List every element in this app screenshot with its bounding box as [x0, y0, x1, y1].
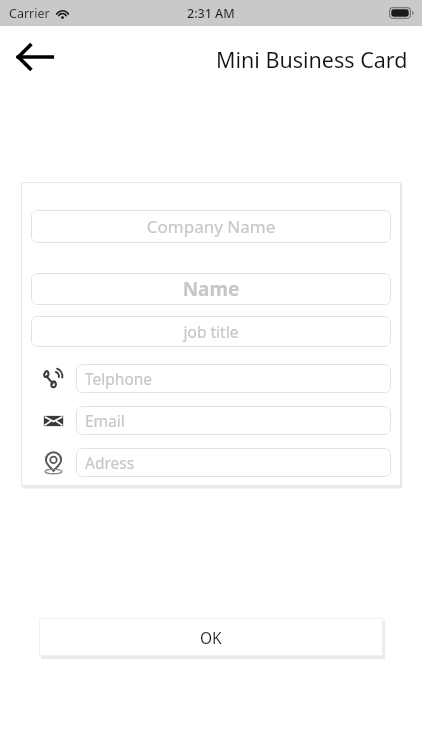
button[interactable]: Telphone: [76, 364, 391, 393]
button[interactable]: Back: [12, 34, 58, 80]
staticText: Email: [85, 410, 125, 431]
button[interactable]: OK: [39, 618, 383, 656]
staticText: 2:31 AM: [187, 5, 235, 22]
button[interactable]: Name: [31, 273, 391, 305]
button[interactable]: Email: [76, 406, 391, 435]
staticText: OK: [200, 627, 222, 648]
staticText: Name: [41, 276, 381, 302]
staticText: Company Name: [41, 215, 381, 238]
staticText: Adress: [85, 452, 135, 473]
button[interactable]: Adress: [76, 448, 391, 477]
staticText: job title: [41, 321, 381, 342]
staticText: Mini Business Card: [216, 45, 408, 74]
staticText: Carrier: [9, 5, 50, 22]
staticText: Telphone: [85, 368, 153, 389]
button[interactable]: job title: [31, 316, 391, 347]
button[interactable]: Company Name: [31, 210, 391, 243]
